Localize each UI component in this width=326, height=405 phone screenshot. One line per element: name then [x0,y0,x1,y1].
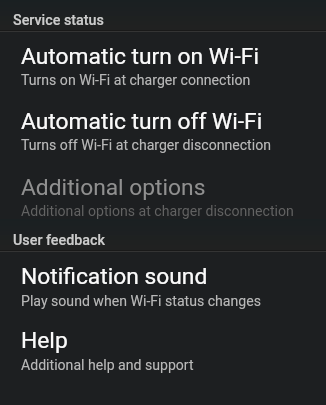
staticText: Additional options [21,174,206,201]
button[interactable]: Additional options [0,163,326,220]
staticText: Turns off Wi-Fi at charger disconnection [21,137,271,154]
button[interactable]: Automatic turn off Wi-Fi [0,97,326,163]
staticText: User feedback [13,232,106,249]
staticText: Additional options at charger disconnect… [21,203,294,220]
staticText: Automatic turn on Wi-Fi [21,43,259,70]
staticText: Help [21,327,68,354]
button[interactable]: Help [0,316,326,380]
staticText: Turns on Wi-Fi at charger connection [21,72,251,89]
staticText: Automatic turn off Wi-Fi [21,108,263,135]
staticText: Service status [13,12,104,29]
button[interactable]: Automatic turn on Wi-Fi [0,32,326,97]
button[interactable]: Notification sound [0,252,326,316]
staticText: Additional help and support [21,357,194,374]
staticText: Play sound when Wi-Fi status changes [21,293,261,310]
staticText: Notification sound [21,263,208,290]
